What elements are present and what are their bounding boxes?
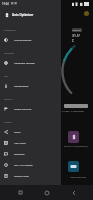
staticText: Feedback <box>14 152 25 155</box>
staticText: 2.1GB / 7.4GB used <box>62 109 84 112</box>
button[interactable]: Game booster <box>68 161 79 172</box>
button[interactable]: Temperature <box>0 80 61 91</box>
staticText: Appearance <box>4 29 16 32</box>
button[interactable]: Recents <box>14 186 27 199</box>
button[interactable]: Ver 1.4.5 Update <box>0 159 61 170</box>
staticText: Unit <box>4 75 9 78</box>
staticText: 19:04 <box>2 2 9 6</box>
staticText: Create shortcut <box>14 107 32 110</box>
button[interactable]: Feedback <box>0 148 61 159</box>
button[interactable]: Create shortcut <box>0 103 61 114</box>
button[interactable]: Back <box>67 186 80 199</box>
staticText: NORMAL <box>72 29 82 32</box>
button[interactable]: Share <box>0 126 61 137</box>
staticText: Privacy Policy <box>14 174 30 177</box>
staticText: Ver 1.4.5 Update <box>14 163 33 166</box>
staticText: Theme settings <box>14 38 32 41</box>
button[interactable]: Home <box>40 186 53 199</box>
button[interactable]: Privacy Policy <box>0 170 61 181</box>
staticText: Game Booster <box>70 175 87 178</box>
staticText: Temperature <box>14 84 29 87</box>
staticText: Language <box>4 52 14 55</box>
button[interactable]: Theme settings <box>0 34 61 45</box>
button[interactable]: Extend battery time <box>68 131 79 143</box>
staticText: NEW Apps <box>14 141 26 144</box>
staticText: Extend Time (Battery) <box>64 144 89 147</box>
staticText: Share <box>14 130 21 133</box>
staticText: Shortcut <box>4 98 13 101</box>
button[interactable]: Language settings <box>0 57 61 68</box>
staticText: Support <box>4 121 12 124</box>
staticText: Language settings <box>14 61 35 64</box>
button[interactable]: NEW Apps <box>0 137 61 148</box>
button[interactable]: Premium <box>84 11 89 16</box>
staticText: Auto Optimizer <box>12 13 34 17</box>
button[interactable]: Auto Optimizer <box>0 7 61 22</box>
staticText: 31.5°C <box>72 33 82 43</box>
